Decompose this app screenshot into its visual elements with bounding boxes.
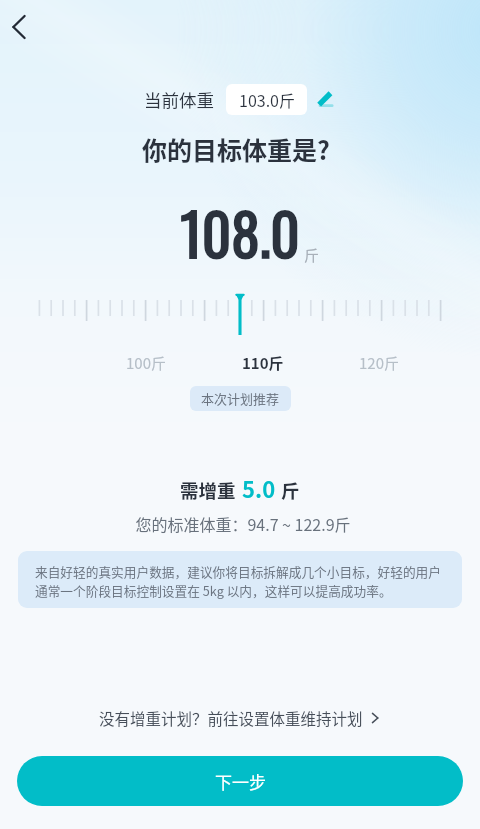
staticText: 需增重 (180, 477, 236, 504)
button[interactable]: 103.0斤 (226, 84, 307, 115)
staticText: 108.0 (0, 190, 480, 274)
staticText: 下一步 (215, 769, 266, 794)
staticText: 5.0 (242, 472, 276, 504)
button[interactable]: Edit weight (311, 86, 337, 112)
staticText: 您的标准体重：94.7 ~ 122.9斤 (3, 512, 480, 535)
staticText: 103.0斤 (239, 88, 295, 111)
staticText: 来自好轻的真实用户数据，建议你将目标拆解成几个小目标，好轻的用户通常一个阶段目标… (35, 562, 446, 600)
staticText: 120斤 (359, 352, 399, 374)
staticText: 100斤 (126, 352, 166, 374)
staticText: 当前体重 (144, 87, 214, 112)
button[interactable]: 下一步 (17, 756, 463, 806)
staticText: 你的目标体重是? (0, 131, 476, 167)
button[interactable]: 没有增重计划？前往设置体重维持计划 (0, 703, 480, 733)
staticText: 110斤 (242, 352, 284, 374)
staticText: 斤 (304, 244, 320, 266)
button[interactable]: Back (0, 5, 41, 49)
staticText: 没有增重计划？前往设置体重维持计划 (99, 707, 363, 729)
staticText: 斤 (281, 477, 300, 504)
staticText: 本次计划推荐 (201, 389, 280, 408)
